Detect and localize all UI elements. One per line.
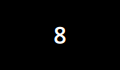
staticText: 8 xyxy=(53,20,66,50)
